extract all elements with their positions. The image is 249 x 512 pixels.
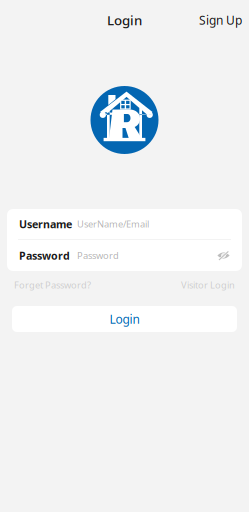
staticText: Visitor Login — [181, 279, 235, 291]
staticText: Forget Password? — [14, 279, 91, 291]
staticText: UserName/Email — [77, 218, 149, 230]
button[interactable]: Forget Password? — [14, 276, 91, 294]
staticText: Login — [107, 11, 142, 29]
staticText: Sign Up — [199, 12, 242, 28]
staticText: Login — [109, 311, 139, 327]
staticText: Username — [19, 217, 72, 231]
button[interactable]: Login — [12, 306, 237, 332]
button[interactable]: Show password — [215, 245, 232, 266]
button[interactable]: Sign Up — [192, 7, 249, 33]
staticText: Password — [77, 249, 119, 262]
staticText: Password — [19, 248, 70, 263]
button[interactable]: Visitor Login — [181, 276, 235, 294]
